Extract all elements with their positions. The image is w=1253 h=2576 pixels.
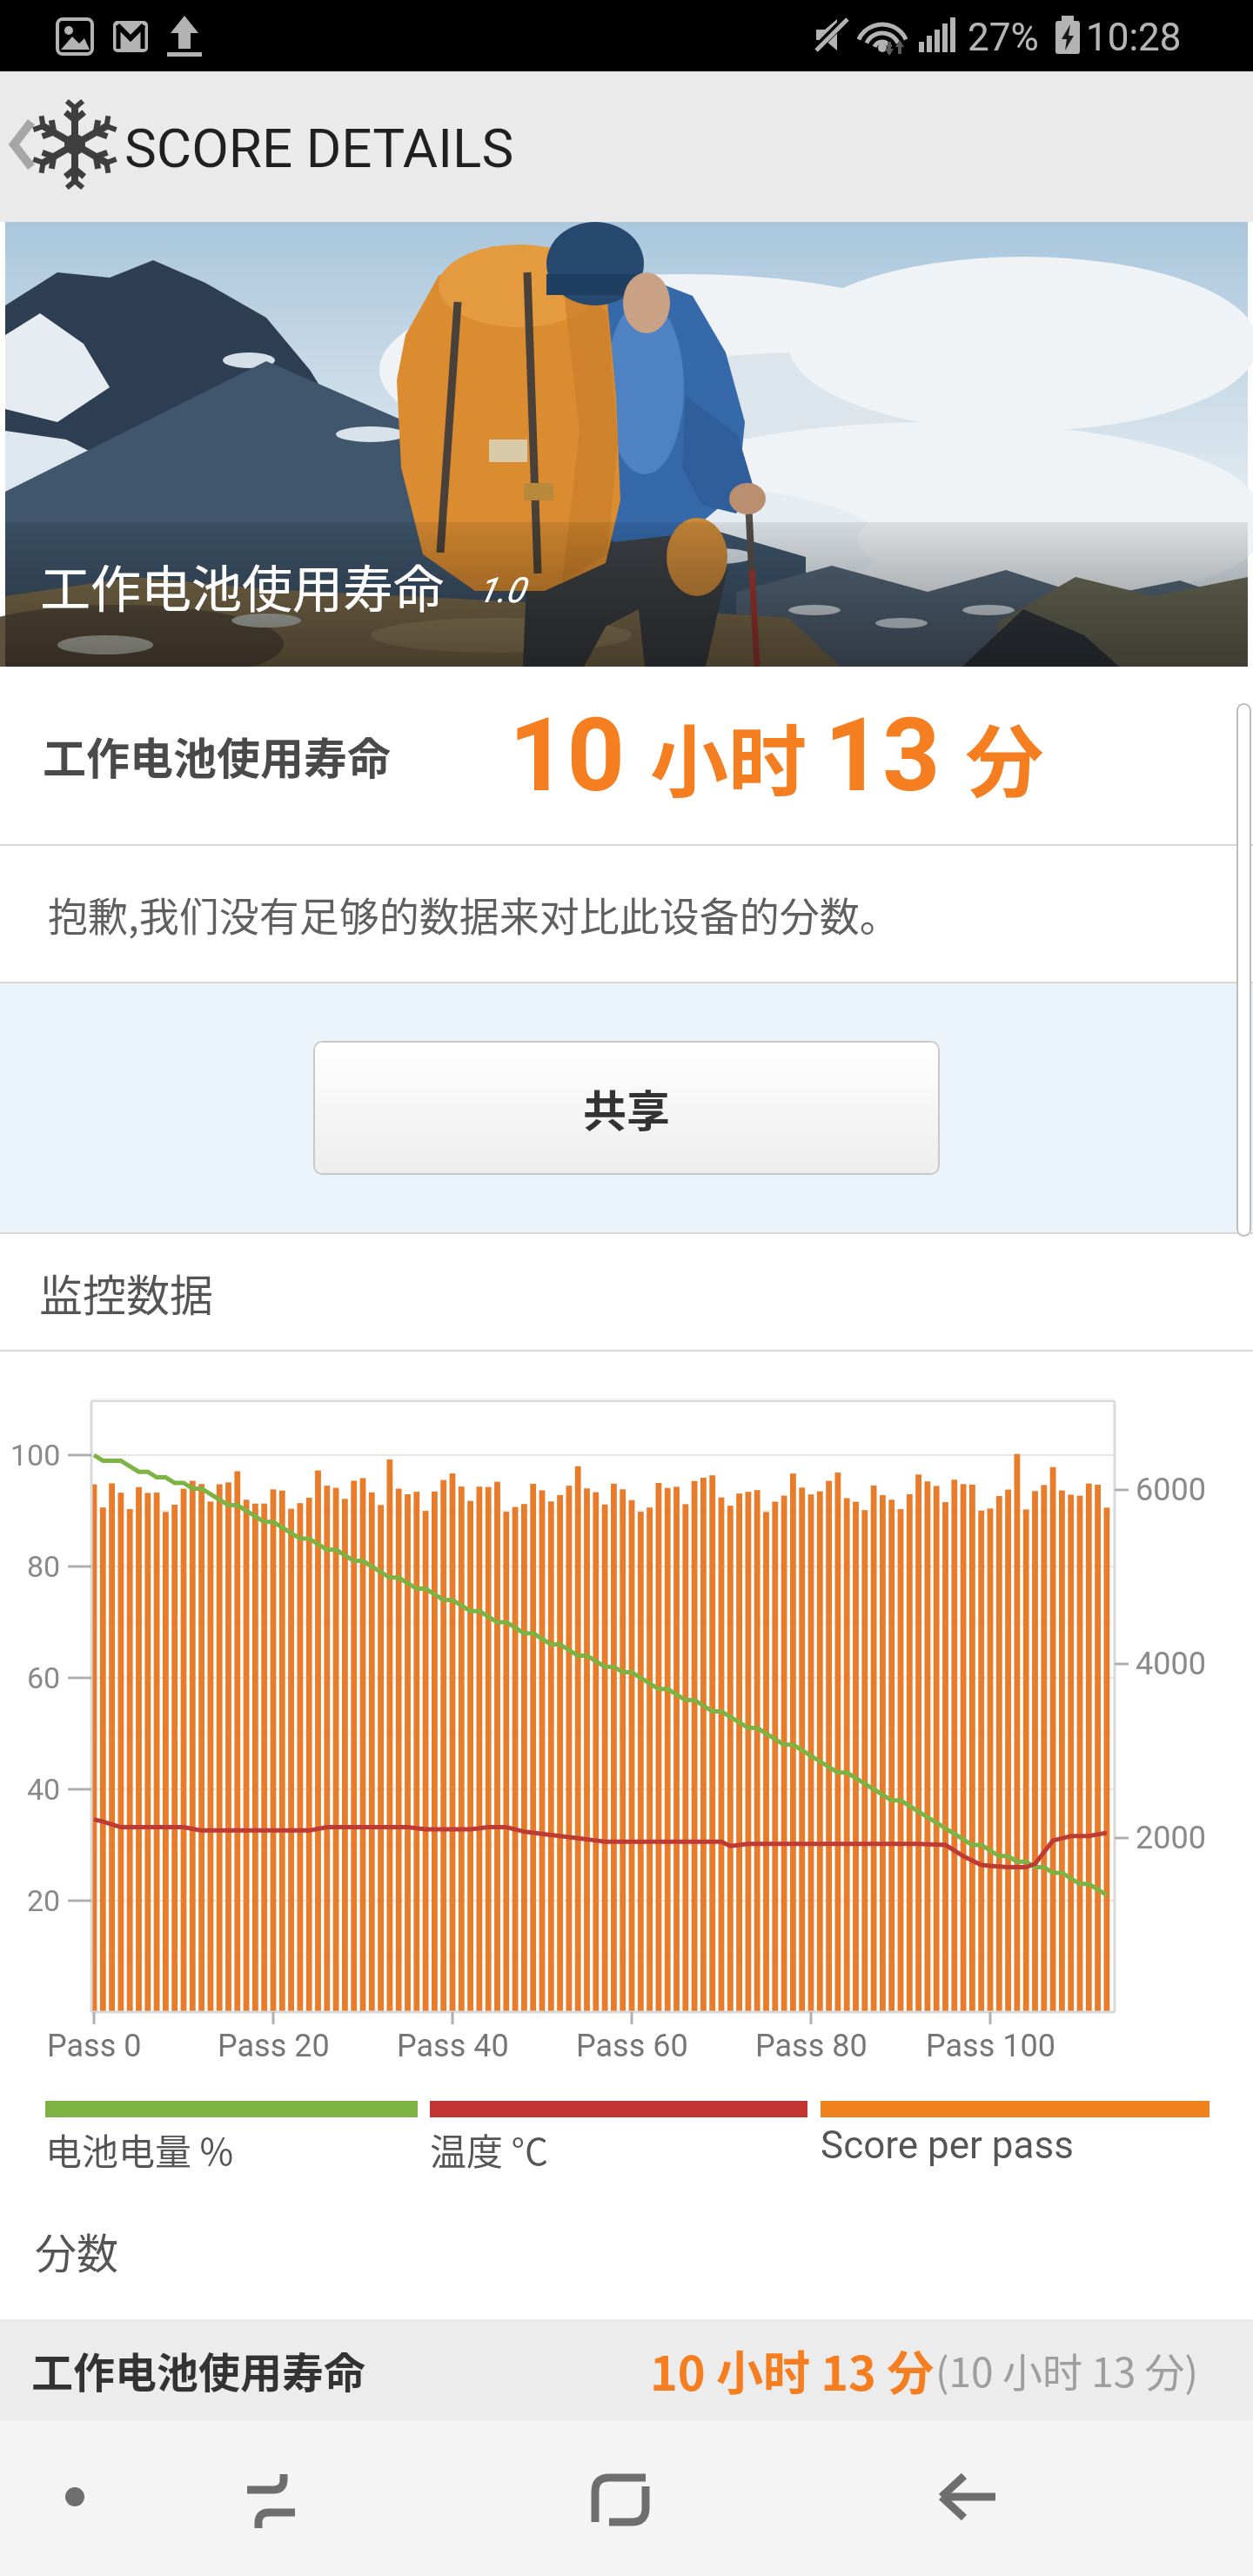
staticText: Pass 100 [926, 2028, 1055, 2064]
staticText: 电池电量 % [45, 2123, 234, 2176]
staticText: 监控数据 [39, 1261, 213, 1324]
staticText: Pass 20 [218, 2028, 330, 2064]
staticText: 40 [27, 1772, 61, 1807]
staticText: 工作电池使用寿命 [43, 724, 391, 787]
button[interactable] [23, 2445, 127, 2549]
staticText: Pass 0 [47, 2028, 142, 2064]
staticText: 4000 [1136, 1646, 1206, 1682]
staticText: (10 小时 13 分) [935, 2341, 1199, 2399]
staticText: 10 小时 13 分 [650, 2336, 935, 2404]
staticText: 6000 [1136, 1472, 1206, 1508]
staticText: 10 小时 13 分 [509, 696, 1044, 815]
button[interactable] [218, 2445, 322, 2549]
staticText: Pass 80 [755, 2028, 868, 2064]
staticText: 工作电池使用寿命 [31, 2339, 366, 2400]
staticText: 100 [10, 1438, 61, 1472]
staticText: 10:28 [1086, 15, 1182, 60]
staticText: Score per pass [821, 2123, 1074, 2168]
staticText: 1.0 [478, 570, 525, 611]
button[interactable] [0, 97, 113, 211]
staticText: 27% [968, 15, 1039, 60]
staticText: 温度 °C [430, 2123, 548, 2176]
button[interactable] [914, 2445, 1018, 2549]
staticText: Pass 40 [397, 2028, 509, 2064]
staticText: 60 [27, 1660, 61, 1695]
staticText: 2000 [1136, 1820, 1206, 1856]
staticText: 80 [27, 1549, 61, 1584]
staticText: 共享 [583, 1077, 670, 1139]
button[interactable]: 共享 [313, 1041, 940, 1175]
button[interactable]: 工作电池使用寿命 [0, 2319, 1253, 2420]
staticText: 工作电池使用寿命 [40, 549, 445, 622]
button[interactable] [568, 2445, 673, 2549]
staticText: Pass 60 [576, 2028, 688, 2064]
staticText: 分数 [35, 2220, 119, 2281]
staticText: 抱歉,我们没有足够的数据来对比此设备的分数。 [48, 885, 900, 943]
staticText: 20 [27, 1883, 61, 1918]
staticText: SCORE DETAILS [124, 117, 514, 180]
